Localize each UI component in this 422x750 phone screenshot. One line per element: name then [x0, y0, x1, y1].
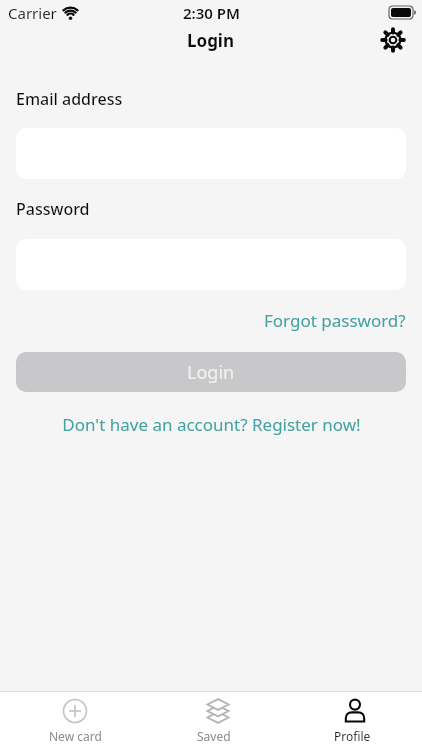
staticText: Password — [16, 198, 90, 220]
staticText: Carrier — [8, 3, 57, 23]
button[interactable]: Saved — [144, 692, 283, 750]
button[interactable]: New card — [6, 692, 144, 750]
button[interactable] — [381, 28, 405, 52]
button[interactable]: Don't have an account? Register now! — [62, 413, 361, 436]
staticText: Email address — [16, 88, 123, 110]
staticText: Login — [187, 360, 235, 385]
staticText: Profile — [334, 728, 371, 744]
button[interactable]: Profile — [283, 692, 422, 750]
staticText: Login — [187, 29, 235, 52]
staticText: Saved — [197, 728, 231, 744]
button[interactable]: Login — [16, 352, 406, 392]
staticText: Forgot password? — [264, 309, 406, 332]
button[interactable]: Forgot password? — [264, 309, 406, 332]
staticText: Don't have an account? Register now! — [62, 413, 361, 436]
staticText: 2:30 PM — [183, 3, 240, 23]
staticText: New card — [49, 728, 102, 744]
